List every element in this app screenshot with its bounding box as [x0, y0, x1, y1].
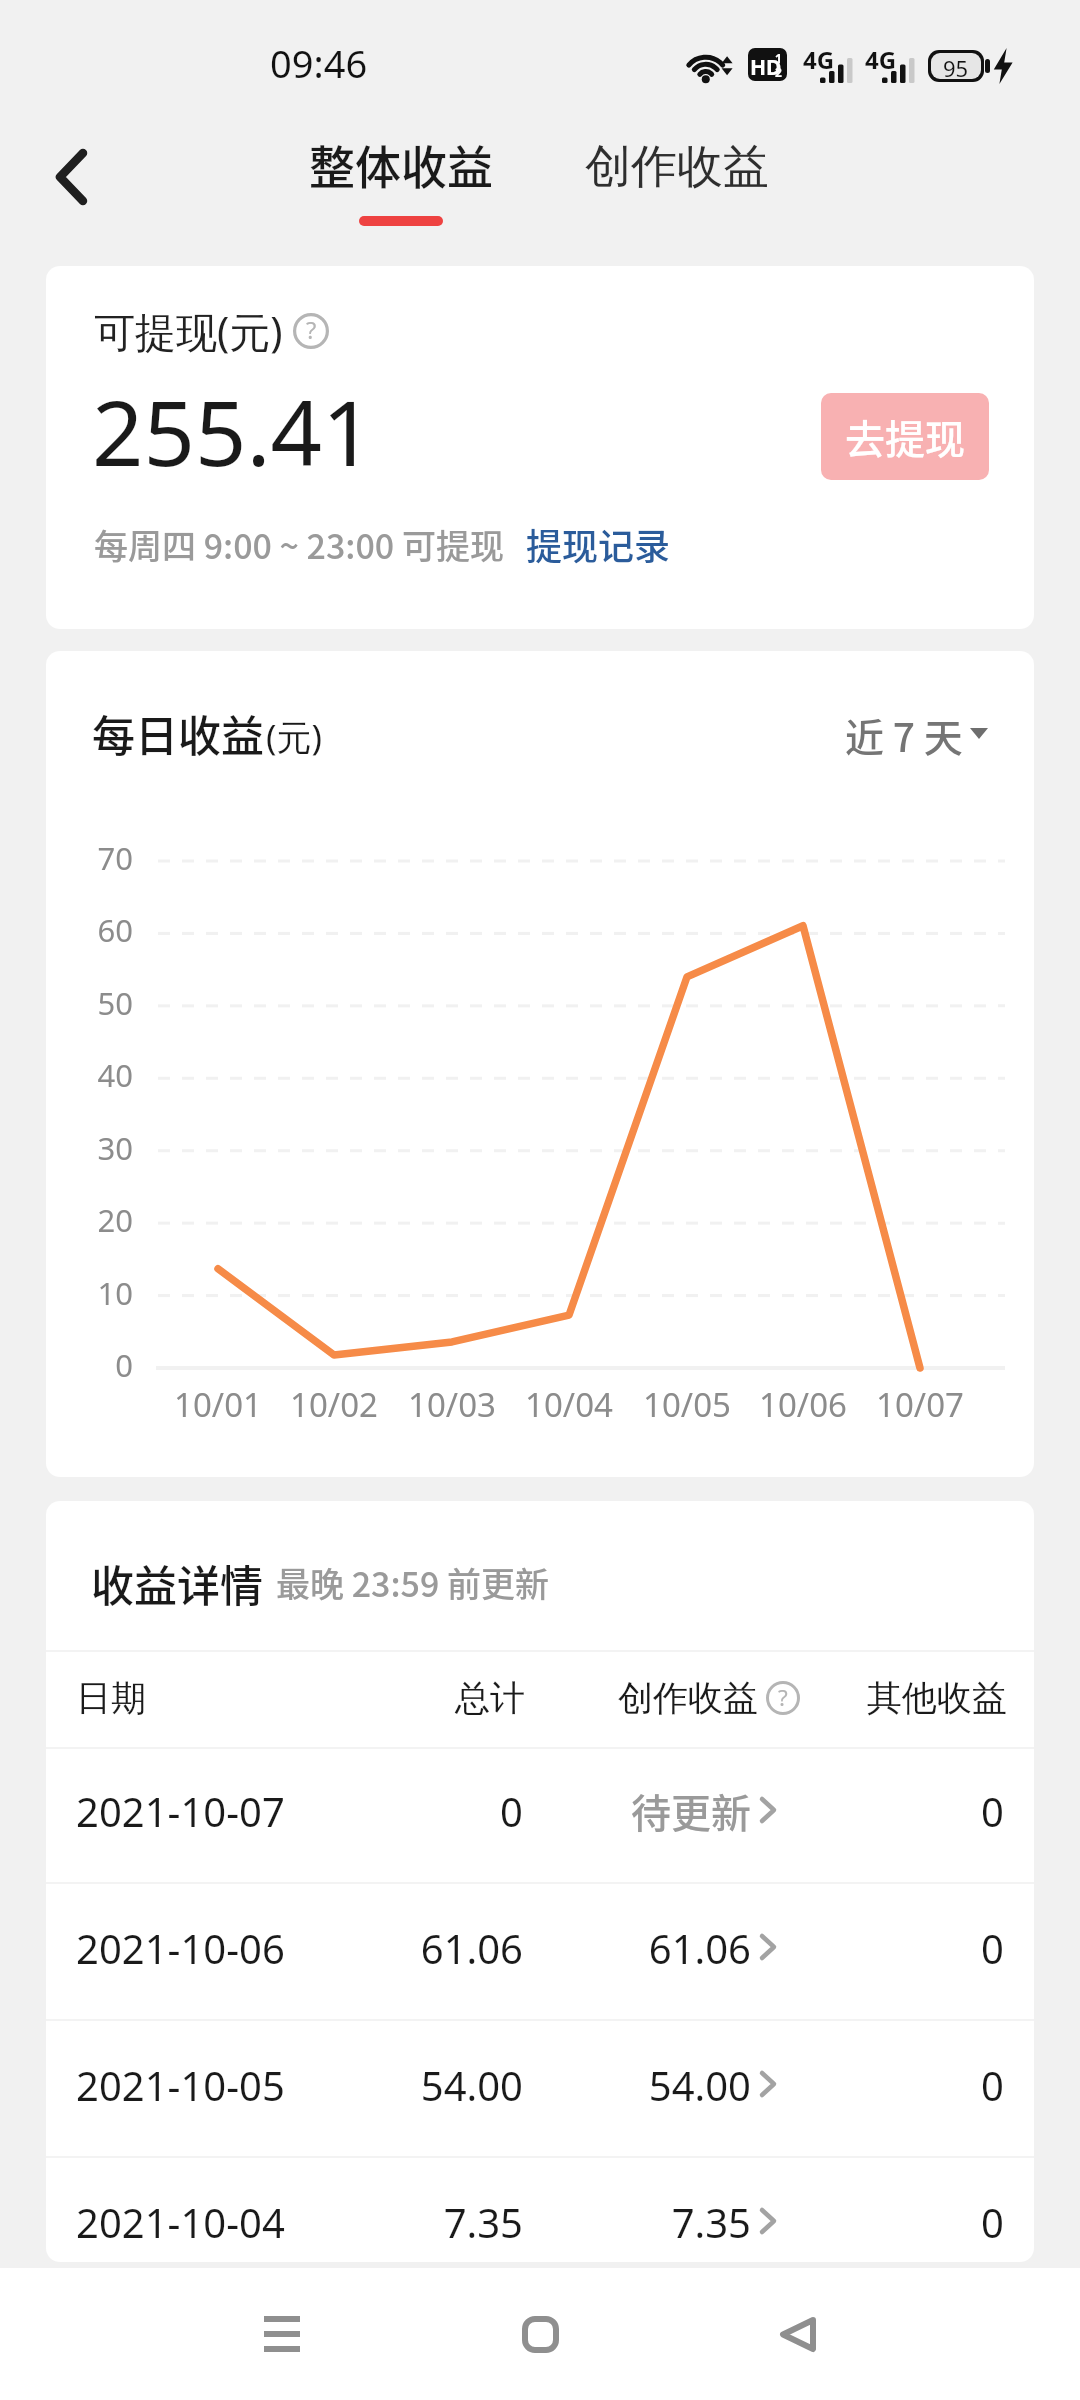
- button[interactable]: 2021-10-05: [46, 2016, 1034, 2153]
- staticText: 0: [830, 1784, 1004, 1838]
- staticText: 255.41: [92, 370, 374, 493]
- button[interactable]: Home: [480, 2268, 600, 2400]
- button[interactable]: 提现记录: [526, 518, 671, 570]
- button[interactable]: 近 7 天: [838, 705, 998, 765]
- staticText: 4G: [865, 43, 897, 76]
- staticText: 待更新: [560, 1782, 751, 1840]
- staticText: 10/01: [148, 1382, 288, 1427]
- staticText: 4G: [803, 43, 835, 76]
- button[interactable]: 去提现: [821, 393, 989, 480]
- staticText: 95: [943, 53, 969, 79]
- staticText: 40: [46, 1054, 133, 1096]
- staticText: 54.00: [330, 2058, 523, 2112]
- staticText: 去提现: [845, 408, 965, 466]
- staticText: 2021-10-05: [76, 2058, 285, 2112]
- button[interactable]: 2021-10-04: [46, 2153, 1034, 2262]
- button[interactable]: 整体收益: [285, 123, 517, 234]
- staticText: 2021-10-07: [76, 1784, 285, 1838]
- staticText: 10/02: [264, 1382, 404, 1427]
- staticText: 10/04: [499, 1382, 639, 1427]
- button[interactable]: Back: [737, 2268, 857, 2400]
- staticText: 0: [830, 1921, 1004, 1975]
- staticText: HD: [750, 53, 782, 81]
- staticText: 0: [830, 2058, 1004, 2112]
- staticText: 日期: [76, 1676, 146, 1720]
- button[interactable]: Recent apps: [222, 2268, 342, 2400]
- staticText: 0: [330, 1784, 523, 1838]
- staticText: ?: [306, 314, 317, 346]
- staticText: 2: [775, 64, 782, 80]
- staticText: 10: [46, 1272, 133, 1314]
- staticText: 每周四 9:00 ~ 23:00 可提现: [94, 520, 504, 569]
- staticText: 提现记录: [526, 518, 671, 570]
- staticText: 61.06: [330, 1921, 523, 1975]
- staticText: 创作收益: [585, 138, 769, 196]
- staticText: 30: [46, 1127, 133, 1169]
- button[interactable]: 2021-10-06: [46, 1879, 1034, 2016]
- staticText: 70: [46, 837, 133, 879]
- staticText: 54.00: [560, 2058, 751, 2112]
- staticText: 61.06: [560, 1921, 751, 1975]
- staticText: 1: [775, 50, 782, 66]
- staticText: 09:46: [270, 37, 368, 89]
- staticText: 近 7 天: [845, 707, 963, 763]
- button[interactable]: 创作收益: [561, 130, 793, 204]
- staticText: 10/06: [733, 1382, 873, 1427]
- staticText: 7.35: [560, 2195, 751, 2249]
- staticText: (元): [266, 713, 323, 761]
- staticText: 0: [46, 1344, 133, 1386]
- staticText: 7.35: [330, 2195, 523, 2249]
- staticText: 整体收益: [309, 131, 493, 198]
- staticText: 10/05: [617, 1382, 757, 1427]
- staticText: 每日收益: [92, 702, 264, 764]
- staticText: 2021-10-04: [76, 2195, 285, 2249]
- button[interactable]: Back: [29, 135, 113, 219]
- staticText: 0: [830, 2195, 1004, 2249]
- button[interactable]: 2021-10-07: [46, 1742, 1034, 1879]
- staticText: 收益详情: [91, 1552, 263, 1614]
- staticText: ?: [778, 1682, 788, 1713]
- staticText: 60: [46, 909, 133, 951]
- staticText: 20: [46, 1199, 133, 1241]
- staticText: 10/07: [850, 1382, 990, 1427]
- staticText: 可提现(元): [94, 303, 283, 359]
- staticText: 50: [46, 982, 133, 1024]
- staticText: 最晚 23:59 前更新: [276, 1558, 549, 1607]
- staticText: 10/03: [382, 1382, 522, 1427]
- staticText: 2021-10-06: [76, 1921, 285, 1975]
- staticText: 总计: [455, 1676, 525, 1720]
- staticText: 其他收益: [867, 1676, 1007, 1720]
- staticText: 创作收益: [618, 1676, 758, 1720]
